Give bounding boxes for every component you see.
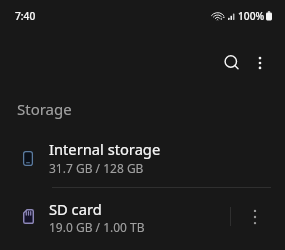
- staticText: 100%: [238, 9, 265, 23]
- button[interactable]: Internal storage: [0, 128, 285, 187]
- button[interactable]: SD card: [0, 188, 285, 247]
- staticText: 7:40: [15, 9, 36, 23]
- staticText: Internal storage: [49, 139, 161, 159]
- staticText: 19.0 GB / 1.00 TB: [49, 219, 145, 235]
- staticText: SD card: [49, 199, 102, 219]
- button[interactable]: Search: [211, 42, 251, 82]
- staticText: 31.7 GB / 128 GB: [49, 160, 144, 176]
- staticText: Storage: [17, 99, 72, 119]
- button[interactable]: SD card options: [237, 199, 273, 235]
- button[interactable]: More options: [240, 43, 280, 83]
